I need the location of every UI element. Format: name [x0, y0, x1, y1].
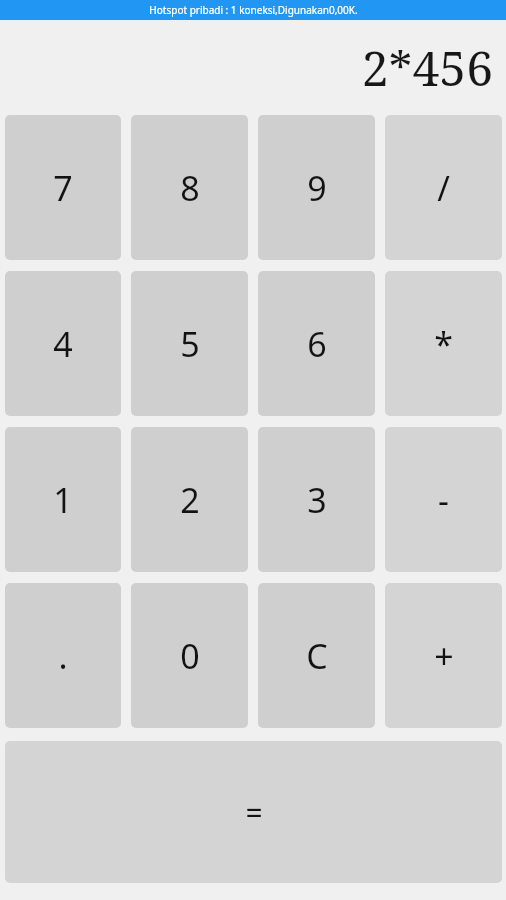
button[interactable]: -	[385, 427, 502, 572]
button[interactable]: +	[385, 583, 502, 728]
staticText: 2*456	[361, 35, 493, 100]
button[interactable]: 1	[5, 427, 121, 572]
staticText: +	[434, 633, 454, 679]
staticText: Hotspot pribadi : 1 koneksi,Digunakan0,0…	[149, 3, 358, 17]
button[interactable]: C	[258, 583, 375, 728]
button[interactable]: 6	[258, 271, 375, 416]
staticText: 8	[180, 165, 200, 211]
staticText: 0	[180, 633, 200, 679]
button[interactable]: 3	[258, 427, 375, 572]
staticText: 2	[180, 477, 200, 523]
button[interactable]: 8	[131, 115, 248, 260]
button[interactable]: 7	[5, 115, 121, 260]
staticText: -	[438, 477, 449, 523]
staticText: 6	[307, 321, 327, 367]
button[interactable]: 0	[131, 583, 248, 728]
staticText: 4	[53, 321, 73, 367]
staticText: 1	[53, 477, 73, 523]
staticText: 3	[307, 477, 327, 523]
staticText: /	[437, 165, 450, 211]
button[interactable]: 4	[5, 271, 121, 416]
staticText: =	[245, 792, 263, 833]
button[interactable]: .	[5, 583, 121, 728]
staticText: 5	[180, 321, 200, 367]
button[interactable]: 5	[131, 271, 248, 416]
button[interactable]: *	[385, 271, 502, 416]
staticText: .	[58, 633, 68, 679]
button[interactable]: 2	[131, 427, 248, 572]
button[interactable]: /	[385, 115, 502, 260]
staticText: 9	[307, 165, 327, 211]
staticText: 7	[53, 165, 73, 211]
staticText: C	[306, 633, 328, 679]
button[interactable]: 9	[258, 115, 375, 260]
staticText: *	[434, 321, 453, 367]
button[interactable]: =	[5, 741, 502, 883]
